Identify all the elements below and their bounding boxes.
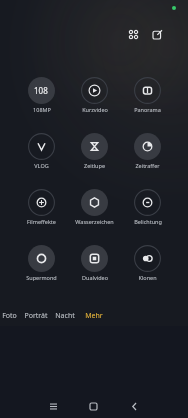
staticText: Zeitlupe bbox=[84, 162, 105, 169]
button[interactable]: Porträt bbox=[20, 306, 52, 326]
button[interactable]: 108MP bbox=[15, 73, 68, 113]
button[interactable]: Zeitlupe bbox=[68, 129, 121, 169]
button[interactable]: Recents bbox=[39, 392, 67, 418]
button[interactable]: Supermond bbox=[15, 241, 68, 281]
button[interactable]: Filmeffekte bbox=[15, 185, 68, 225]
staticText: VLOG bbox=[34, 162, 49, 169]
staticText: Wasserzeichen bbox=[75, 218, 114, 225]
button[interactable]: Foto bbox=[0, 306, 25, 326]
staticText: Foto bbox=[2, 311, 17, 321]
staticText: Mehr bbox=[85, 311, 103, 321]
button[interactable]: Dualvideo bbox=[68, 241, 121, 281]
staticText: 108MP bbox=[33, 106, 51, 113]
button[interactable]: Edit modes bbox=[145, 22, 169, 46]
staticText: Klonen bbox=[138, 274, 157, 281]
staticText: Kurzvideo bbox=[82, 106, 108, 113]
button[interactable]: VLOG bbox=[15, 129, 68, 169]
button[interactable]: Panorama bbox=[121, 73, 174, 113]
button[interactable]: Klonen bbox=[121, 241, 174, 281]
button[interactable]: Home bbox=[79, 392, 107, 418]
staticText: Belichtung bbox=[134, 218, 162, 225]
button[interactable]: Nacht bbox=[49, 306, 81, 326]
staticText: Supermond bbox=[26, 274, 57, 281]
staticText: Porträt bbox=[24, 311, 48, 321]
button[interactable]: Zeitraffer bbox=[121, 129, 174, 169]
staticText: Nacht bbox=[55, 311, 75, 321]
staticText: Filmeffekte bbox=[27, 218, 56, 225]
button[interactable]: Back bbox=[120, 392, 148, 418]
button[interactable]: Belichtung bbox=[121, 185, 174, 225]
staticText: Dualvideo bbox=[82, 274, 108, 281]
button[interactable]: All modes bbox=[121, 22, 145, 46]
staticText: Zeitraffer bbox=[135, 162, 160, 169]
button[interactable]: Mehr bbox=[78, 306, 110, 326]
staticText: 108 bbox=[34, 85, 48, 96]
button[interactable]: Kurzvideo bbox=[68, 73, 121, 113]
button[interactable]: Wasserzeichen bbox=[68, 185, 121, 225]
staticText: Panorama bbox=[134, 106, 161, 113]
